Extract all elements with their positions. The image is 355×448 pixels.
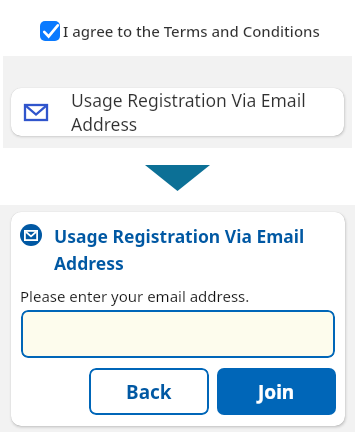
- button[interactable]: Agree to Terms and Conditions checkbox: [40, 21, 60, 41]
- button[interactable]: Email address input field: [21, 310, 335, 358]
- staticText: Join: [258, 379, 295, 405]
- staticText: Usage Registration Via Email Address: [71, 88, 308, 136]
- staticText: Usage Registration Via Email Address: [54, 224, 313, 275]
- staticText: I agree to the Terms and Conditions: [63, 21, 320, 41]
- button[interactable]: Back: [89, 368, 209, 415]
- staticText: Please enter your email address.: [20, 286, 250, 306]
- button[interactable]: Join: [217, 368, 336, 415]
- button[interactable]: Usage Registration Via Email Address: [11, 88, 344, 136]
- staticText: Back: [126, 379, 172, 405]
